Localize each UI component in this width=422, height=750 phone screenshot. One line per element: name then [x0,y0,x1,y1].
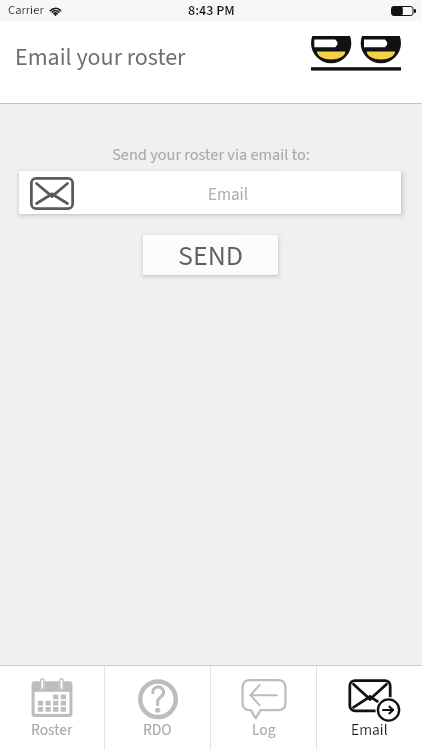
staticText: 8:43 PM [188,1,235,21]
staticText: SEND [178,236,244,275]
button[interactable]: RDO [105,665,210,750]
button[interactable]: Email [19,171,401,214]
staticText: Email [208,183,249,207]
staticText: Email your roster [15,40,186,74]
staticText: Roster [31,719,73,741]
staticText: RDO [143,719,172,741]
button[interactable]: SEND [143,235,278,275]
staticText: Log [252,719,276,741]
staticText: Send your roster via email to: [0,143,422,166]
button[interactable]: Log [211,665,316,750]
button[interactable]: Email [317,665,422,750]
staticText: Email [351,719,388,741]
button[interactable]: Roster [0,665,104,750]
staticText: Carrier [8,1,44,19]
